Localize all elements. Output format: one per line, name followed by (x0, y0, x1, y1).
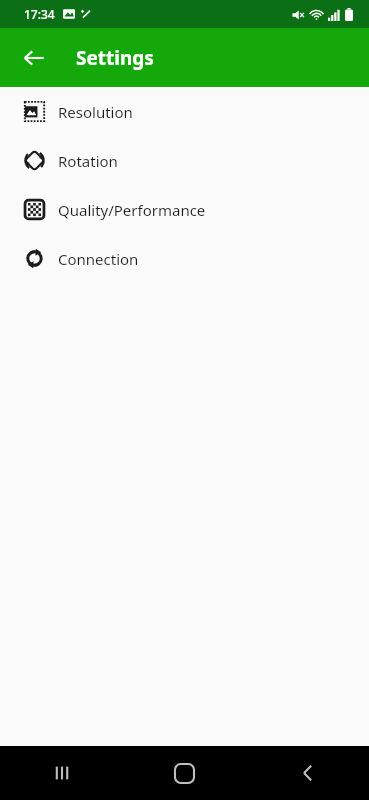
button[interactable]: Connection (0, 234, 369, 283)
button[interactable]: Rotation (0, 136, 369, 185)
staticText: Settings (76, 45, 154, 71)
staticText: Rotation (58, 151, 118, 171)
staticText: Quality/Performance (58, 200, 206, 220)
button[interactable]: Back (246, 746, 369, 800)
staticText: 17:34 (24, 6, 55, 22)
button[interactable]: Recents (0, 746, 123, 800)
button[interactable]: Quality/Performance (0, 185, 369, 234)
staticText: Resolution (58, 102, 133, 122)
button[interactable]: Resolution (0, 87, 369, 136)
button[interactable]: Back (12, 36, 56, 80)
staticText: Connection (58, 249, 139, 269)
button[interactable]: Home (123, 746, 246, 800)
